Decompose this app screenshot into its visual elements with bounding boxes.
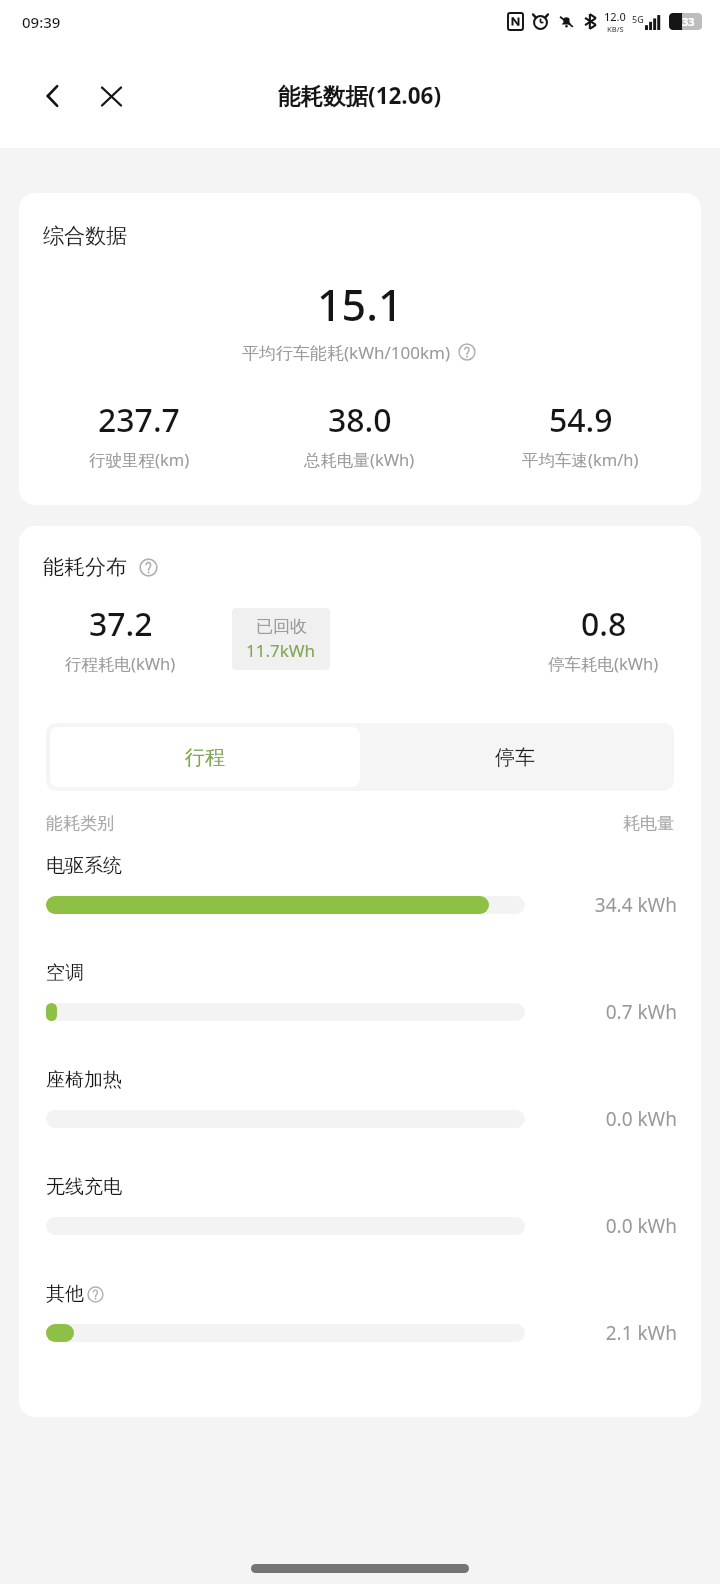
staticText: 行驶里程(km) (89, 448, 190, 471)
staticText: 15.1 (317, 275, 403, 334)
button[interactable]: 停车 (360, 727, 670, 787)
button[interactable]: 座椅加热 (19, 1068, 701, 1175)
staticText: 0.8 (581, 602, 627, 646)
staticText: 综合数据 (43, 223, 127, 249)
button[interactable]: 无线充电 (19, 1175, 701, 1282)
button[interactable]: 行程 (50, 727, 360, 787)
staticText: 平均车速(km/h) (522, 448, 639, 471)
staticText: 37.2 (89, 602, 153, 646)
staticText: 座椅加热 (46, 1068, 122, 1092)
staticText: 34.4 kWh (594, 892, 677, 918)
staticText: 耗电量 (623, 813, 674, 834)
staticText: 已回收 (256, 616, 307, 637)
staticText: 33 (682, 14, 695, 29)
staticText: 行程耗电(kWh) (65, 652, 176, 675)
staticText: 38.0 (328, 398, 392, 442)
staticText: 11.7kWh (246, 639, 316, 662)
staticText: 停车耗电(kWh) (548, 652, 659, 675)
button[interactable]: Back (26, 69, 80, 123)
staticText: 无线充电 (46, 1175, 122, 1199)
button[interactable]: 其他 (19, 1282, 701, 1389)
staticText: 总耗电量(kWh) (304, 448, 415, 471)
staticText: 0.7 kWh (605, 999, 677, 1025)
button[interactable]: 电驱系统 (19, 854, 701, 961)
button[interactable]: Close (84, 69, 138, 123)
staticText: 能耗类别 (46, 813, 114, 834)
staticText: 237.7 (98, 398, 180, 442)
staticText: 行程 (185, 745, 225, 770)
staticText: 09:39 (22, 12, 61, 32)
staticText: 5G (632, 13, 644, 25)
staticText: 0.0 kWh (605, 1106, 677, 1132)
staticText: 平均行车能耗(kWh/100km) (242, 341, 451, 364)
staticText: 54.9 (549, 398, 613, 442)
staticText: 能耗分布 (43, 554, 127, 580)
button[interactable]: 关于能耗分布 (135, 554, 161, 580)
button[interactable]: 空调 (19, 961, 701, 1068)
staticText: 2.1 kWh (605, 1320, 677, 1346)
staticText: 其他 (46, 1282, 84, 1306)
staticText: 空调 (46, 961, 84, 985)
staticText: 能耗数据(12.06) (278, 80, 442, 111)
staticText: 停车 (495, 745, 535, 770)
staticText: 12.0 (604, 9, 626, 24)
staticText: 0.0 kWh (605, 1213, 677, 1239)
staticText: 电驱系统 (46, 854, 122, 878)
button[interactable]: 关于平均行车能耗 (455, 340, 479, 364)
staticText: KB/S (607, 24, 624, 34)
